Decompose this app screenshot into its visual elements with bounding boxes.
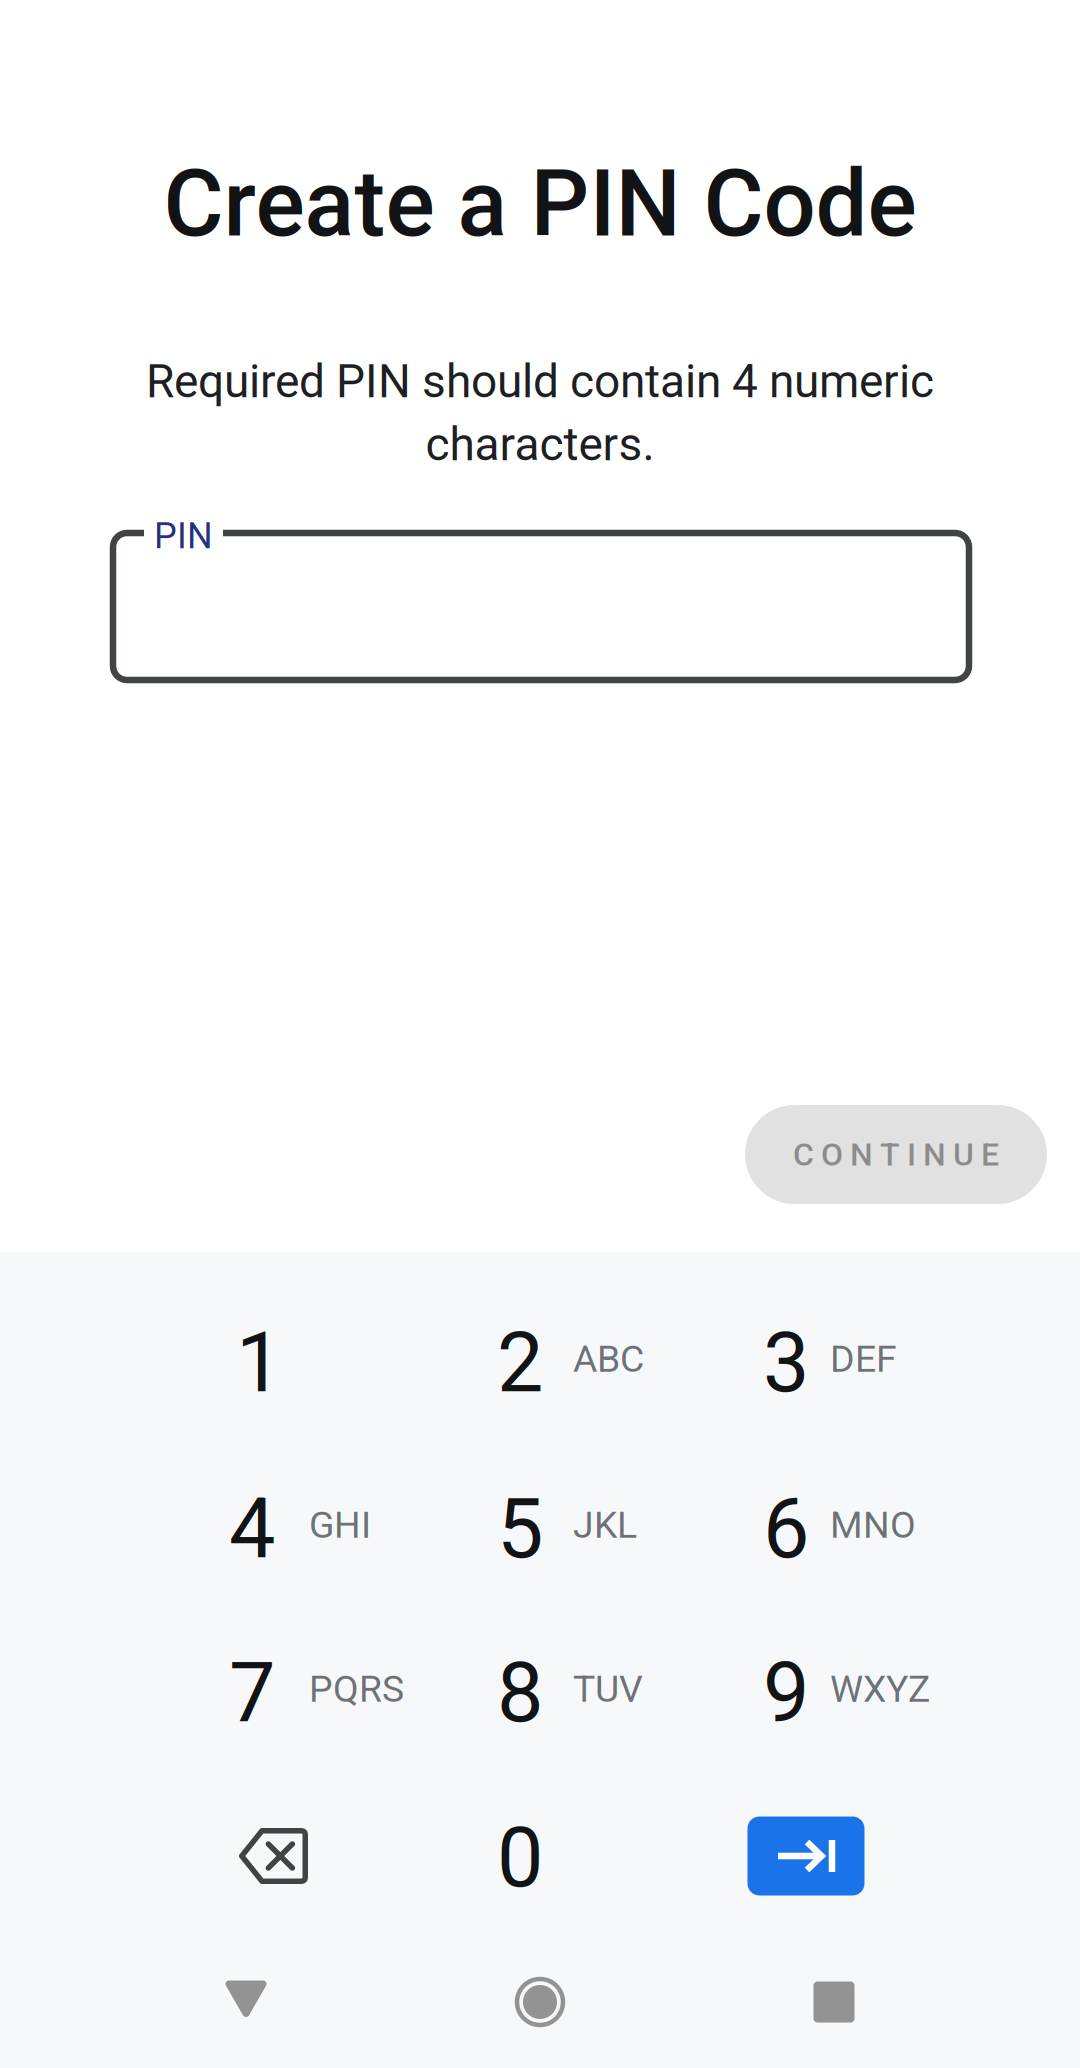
staticText: 9 bbox=[763, 1645, 809, 1741]
button[interactable]: Next field bbox=[686, 1781, 926, 1931]
button[interactable]: Home bbox=[440, 1942, 640, 2062]
staticText: 1 bbox=[236, 1315, 282, 1411]
staticText: PIN bbox=[154, 515, 213, 557]
button[interactable]: 0 bbox=[400, 1783, 640, 1933]
button[interactable]: 7 bbox=[201, 1609, 468, 1773]
button[interactable]: 9 bbox=[735, 1609, 1002, 1773]
staticText: 7 bbox=[229, 1645, 275, 1741]
button[interactable]: 2 bbox=[469, 1279, 736, 1443]
staticText: C O N T I N U E bbox=[793, 1136, 999, 1173]
staticText: 5 bbox=[497, 1481, 543, 1577]
staticText: ABC bbox=[573, 1337, 644, 1381]
staticText: TUV bbox=[573, 1667, 643, 1711]
staticText: Required PIN should contain 4 numeric bbox=[146, 354, 934, 408]
staticText: PQRS bbox=[309, 1667, 404, 1711]
staticText: 6 bbox=[763, 1481, 809, 1577]
staticText: GHI bbox=[309, 1503, 371, 1547]
staticText: characters. bbox=[425, 417, 654, 471]
button[interactable]: Backspace bbox=[153, 1781, 393, 1931]
staticText: 4 bbox=[229, 1481, 275, 1577]
staticText: 3 bbox=[763, 1315, 809, 1411]
staticText: Create a PIN Code bbox=[163, 150, 916, 258]
staticText: MNO bbox=[830, 1503, 916, 1547]
staticText: DEF bbox=[830, 1337, 897, 1381]
button[interactable]: 4 bbox=[201, 1445, 468, 1609]
button[interactable]: 3 bbox=[735, 1279, 1002, 1443]
staticText: WXYZ bbox=[830, 1667, 930, 1711]
staticText: 0 bbox=[497, 1810, 543, 1906]
button[interactable]: C O N T I N U E bbox=[745, 1105, 1047, 1204]
staticText: JKL bbox=[573, 1503, 637, 1547]
button[interactable]: 5 bbox=[469, 1445, 736, 1609]
staticText: 8 bbox=[497, 1645, 543, 1741]
button[interactable]: 1 bbox=[201, 1279, 468, 1443]
staticText: 2 bbox=[497, 1315, 543, 1411]
button[interactable]: 6 bbox=[735, 1445, 1002, 1609]
button[interactable]: 8 bbox=[469, 1609, 736, 1773]
button[interactable]: Recent apps bbox=[734, 1942, 934, 2062]
button[interactable]: Back bbox=[146, 1939, 346, 2059]
